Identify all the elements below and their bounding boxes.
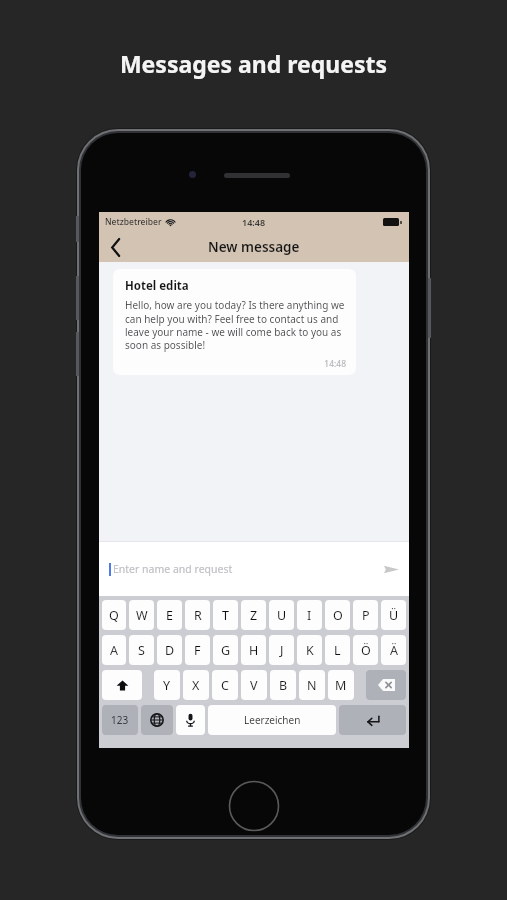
button[interactable]: C xyxy=(212,670,238,700)
button[interactable]: M xyxy=(328,670,354,700)
staticText: Ä xyxy=(390,642,398,659)
button[interactable]: V xyxy=(241,670,267,700)
staticText: 14:48 xyxy=(242,216,266,228)
staticText: Ü xyxy=(389,607,399,624)
button[interactable]: F xyxy=(185,635,210,665)
staticText: Q xyxy=(109,607,119,624)
staticText: 14:48 xyxy=(125,358,346,370)
button[interactable]: J xyxy=(269,635,294,665)
button[interactable]: I xyxy=(297,600,322,630)
button[interactable]: A xyxy=(102,635,126,665)
button[interactable]: 123 xyxy=(102,705,138,735)
button[interactable]: E xyxy=(157,600,182,630)
staticText: L xyxy=(334,642,341,659)
button[interactable]: X xyxy=(183,670,209,700)
staticText: New message xyxy=(208,238,300,256)
staticText: Ö xyxy=(361,642,371,659)
button[interactable]: Leerzeichen xyxy=(208,705,336,735)
staticText: F xyxy=(194,642,201,659)
staticText: H xyxy=(249,642,259,659)
button[interactable]: O xyxy=(325,600,350,630)
staticText: C xyxy=(221,677,229,694)
staticText: P xyxy=(362,607,370,624)
button[interactable]: Ü xyxy=(381,600,406,630)
button[interactable]: W xyxy=(129,600,154,630)
button[interactable]: Change keyboard language xyxy=(141,705,173,735)
staticText: D xyxy=(165,642,175,659)
staticText: S xyxy=(138,642,145,659)
button[interactable]: Ä xyxy=(381,635,406,665)
button[interactable]: Voice input xyxy=(176,705,205,735)
button[interactable]: Z xyxy=(241,600,266,630)
button[interactable]: G xyxy=(213,635,238,665)
button[interactable]: Backspace xyxy=(366,670,406,700)
button[interactable]: K xyxy=(297,635,322,665)
button[interactable]: Y xyxy=(154,670,180,700)
button[interactable]: Ö xyxy=(353,635,378,665)
staticText: Messages and requests xyxy=(0,48,507,79)
staticText: X xyxy=(192,677,200,694)
staticText: A xyxy=(110,642,118,659)
staticText: B xyxy=(279,677,288,694)
button[interactable]: Shift xyxy=(102,670,142,700)
staticText: G xyxy=(221,642,231,659)
staticText: Z xyxy=(250,607,258,624)
button[interactable]: N xyxy=(299,670,325,700)
staticText: Netzbetreiber xyxy=(105,216,162,228)
staticText: M xyxy=(335,677,347,694)
staticText: Y xyxy=(163,677,171,694)
button[interactable]: B xyxy=(270,670,296,700)
button[interactable]: Return xyxy=(339,705,406,735)
staticText: V xyxy=(250,677,258,694)
button[interactable]: H xyxy=(241,635,266,665)
staticText: U xyxy=(277,607,287,624)
staticText: Hotel edita xyxy=(125,278,189,294)
button[interactable]: P xyxy=(353,600,378,630)
button[interactable]: L xyxy=(325,635,350,665)
button[interactable]: Send xyxy=(373,551,409,587)
button[interactable]: Hotel edita xyxy=(113,269,356,375)
staticText: K xyxy=(306,642,314,659)
staticText: Leerzeichen xyxy=(244,713,301,727)
button[interactable]: T xyxy=(213,600,238,630)
button[interactable]: U xyxy=(269,600,294,630)
staticText: R xyxy=(194,607,202,624)
staticText: T xyxy=(222,607,229,624)
staticText: Enter name and request xyxy=(113,562,233,576)
staticText: Hello, how are you today? Is there anyth… xyxy=(125,298,346,352)
staticText: N xyxy=(307,677,317,694)
staticText: 123 xyxy=(111,713,129,727)
button[interactable]: R xyxy=(185,600,210,630)
staticText: E xyxy=(166,607,173,624)
staticText: W xyxy=(136,607,148,624)
staticText: I xyxy=(307,607,312,624)
button[interactable]: S xyxy=(129,635,154,665)
button[interactable]: D xyxy=(157,635,182,665)
button[interactable]: Q xyxy=(102,600,126,630)
staticText: O xyxy=(333,607,343,624)
button[interactable]: Back xyxy=(99,232,133,262)
staticText: J xyxy=(280,642,284,659)
